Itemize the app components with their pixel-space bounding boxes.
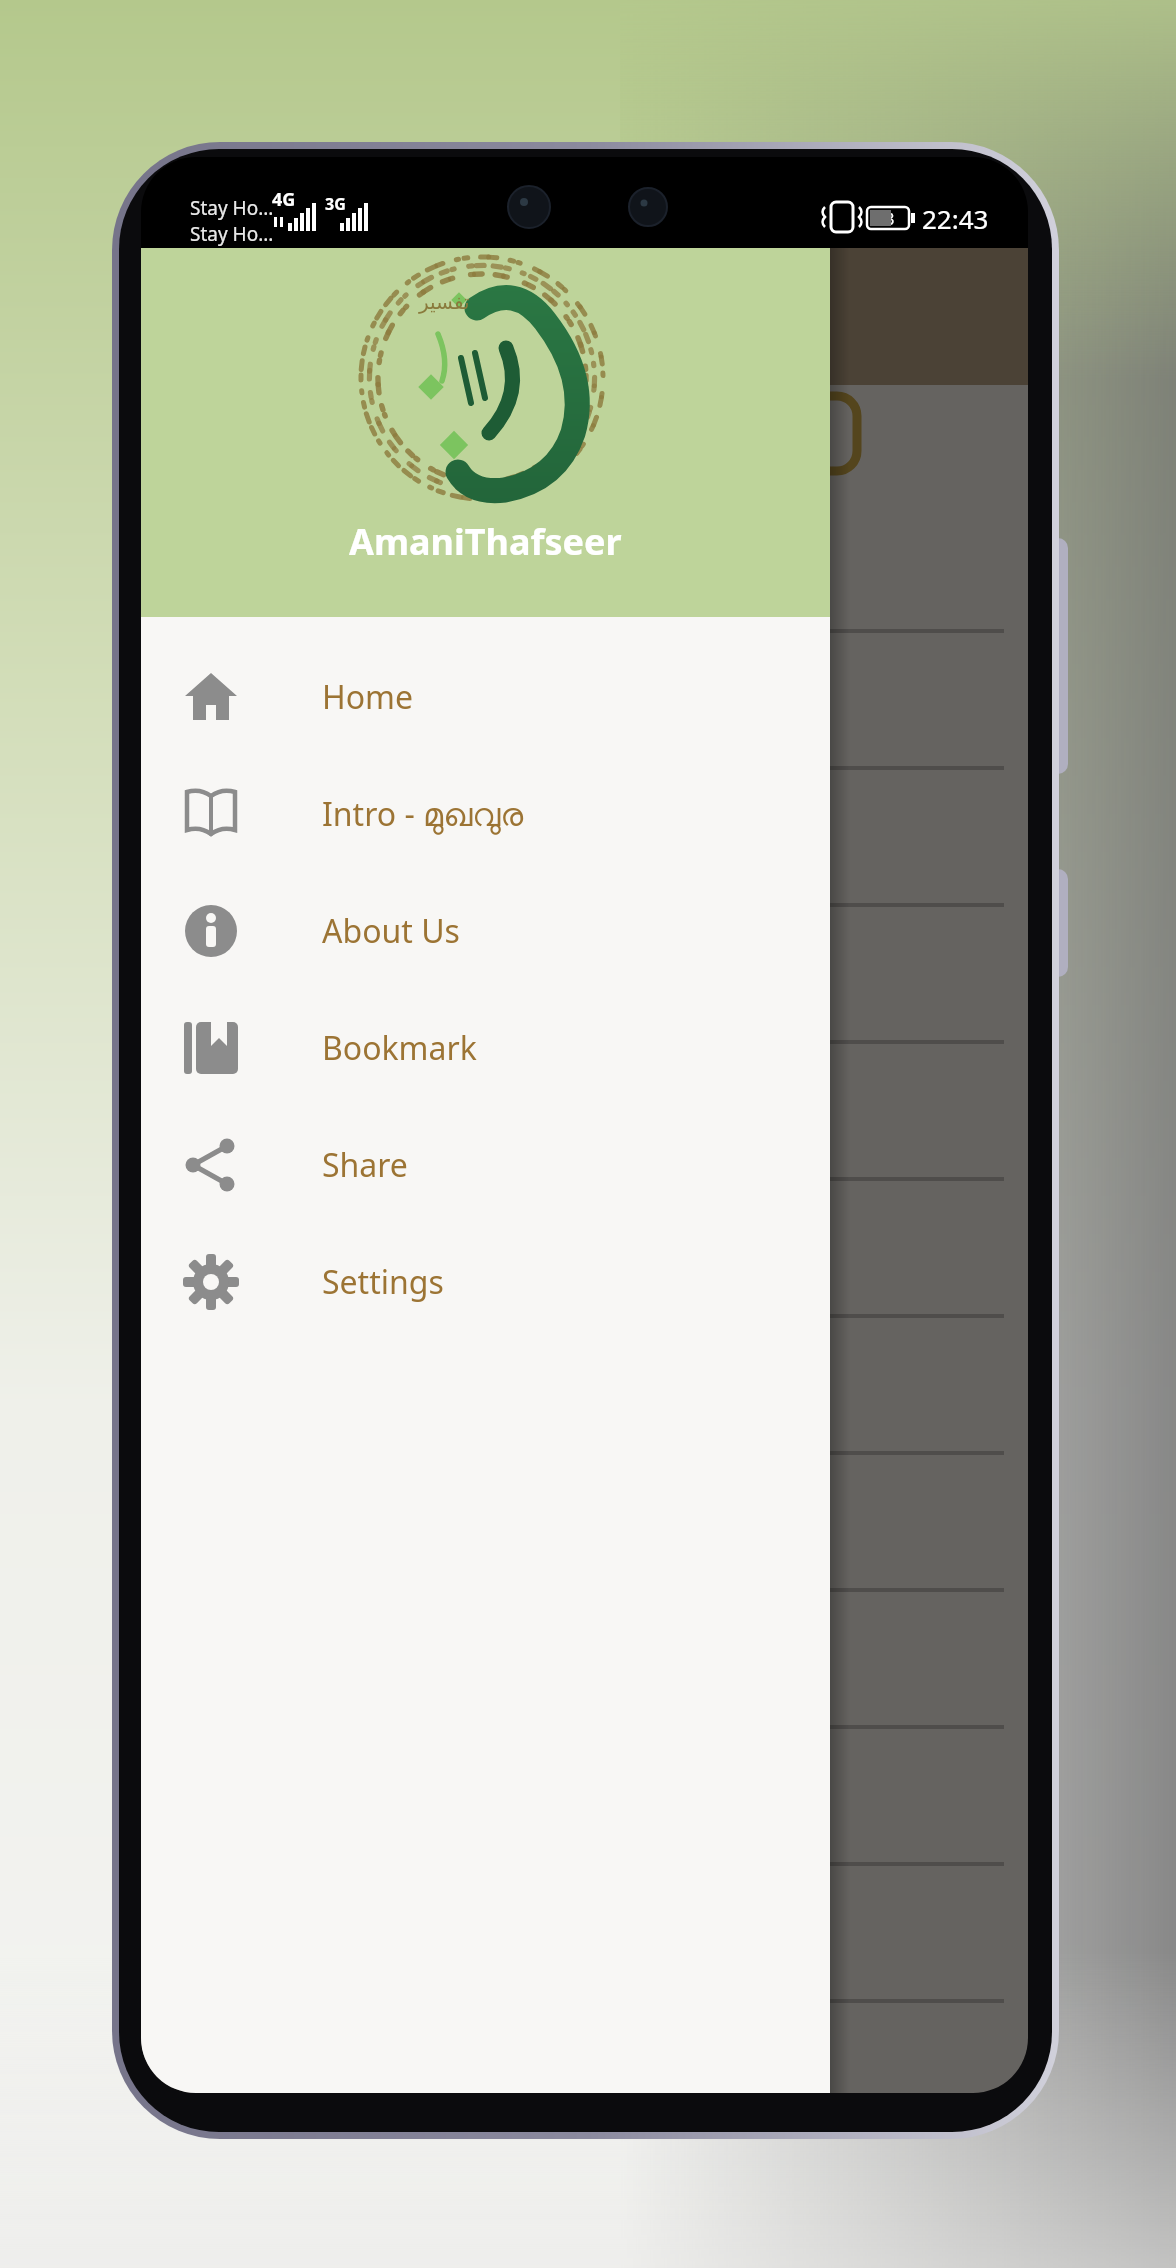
button[interactable]: Settings xyxy=(141,1232,830,1332)
staticText: Stay Ho... Stay Ho... xyxy=(190,195,274,247)
button[interactable]: Intro - മുഖവുര xyxy=(141,764,830,864)
staticText: Home xyxy=(322,675,414,719)
staticText: Settings xyxy=(322,1260,444,1304)
staticText: 43 xyxy=(876,208,895,230)
button[interactable]: About Us xyxy=(141,881,830,981)
staticText: About Us xyxy=(322,909,460,953)
staticText: AmaniThafseer xyxy=(349,517,622,566)
staticText: تفسير xyxy=(419,290,470,313)
button[interactable]: Bookmark xyxy=(141,998,830,1098)
staticText: 22:43 xyxy=(922,201,989,236)
button[interactable]: Home xyxy=(141,647,830,747)
staticText: 4G xyxy=(272,187,296,212)
staticText: 3G xyxy=(325,193,346,215)
staticText: Share xyxy=(322,1143,408,1187)
button[interactable]: Share xyxy=(141,1115,830,1215)
staticText: Bookmark xyxy=(322,1026,477,1070)
staticText: Intro - മുഖവുര xyxy=(322,792,524,836)
